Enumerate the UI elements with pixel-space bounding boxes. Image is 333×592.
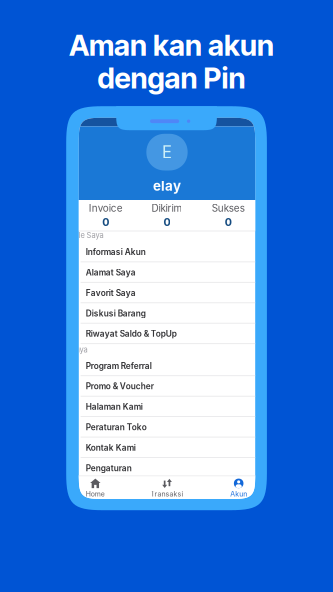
staticText: Profile Saya xyxy=(62,231,104,240)
staticText: Transaksi xyxy=(150,490,183,498)
button[interactable]: Favorit Saya xyxy=(59,283,274,303)
staticText: Favorit Saya xyxy=(86,288,136,298)
button[interactable]: Informasi Akun xyxy=(59,242,274,262)
staticText: 0 xyxy=(225,216,232,228)
staticText: Lainnya xyxy=(62,345,88,354)
button[interactable]: Alamat Saya xyxy=(59,262,274,283)
button[interactable]: Riwayat Saldo & TopUp xyxy=(59,324,274,344)
staticText: Promo & Voucher xyxy=(86,381,154,391)
staticText: Informasi Akun xyxy=(86,247,146,257)
staticText: Aman kan akun xyxy=(69,28,274,63)
button[interactable]: Home xyxy=(59,476,131,498)
button[interactable]: Halaman Kami xyxy=(59,397,274,417)
button[interactable]: Program Referral xyxy=(59,356,274,376)
button[interactable]: Transaksi xyxy=(131,476,203,498)
staticText: Dikirim xyxy=(151,202,182,214)
staticText: Home xyxy=(86,490,105,498)
staticText: Alamat Saya xyxy=(86,267,136,277)
button[interactable]: Diskusi Barang xyxy=(59,303,274,324)
staticText: Akun xyxy=(230,490,247,498)
staticText: Sukses xyxy=(212,202,245,214)
staticText: Program Referral xyxy=(86,361,152,371)
staticText: 0 xyxy=(102,216,109,228)
staticText: 0 xyxy=(163,216,170,228)
staticText: Peraturan Toko xyxy=(86,422,147,432)
button[interactable]: Akun xyxy=(203,476,274,498)
staticText: Diskusi Barang xyxy=(86,308,146,318)
staticText: Halaman Kami xyxy=(86,402,143,412)
button[interactable]: Promo & Voucher xyxy=(59,376,274,396)
staticText: dengan Pin xyxy=(97,61,245,95)
button[interactable]: Pengaturan xyxy=(59,458,274,478)
button[interactable]: Kontak Kami xyxy=(59,437,274,458)
staticText: E xyxy=(162,142,172,162)
staticText: Riwayat Saldo & TopUp xyxy=(86,329,177,339)
staticText: Kontak Kami xyxy=(86,443,136,453)
staticText: Invoice xyxy=(89,202,123,214)
button[interactable]: Peraturan Toko xyxy=(59,417,274,437)
staticText: elay xyxy=(153,178,181,194)
staticText: Pengaturan xyxy=(86,463,132,473)
